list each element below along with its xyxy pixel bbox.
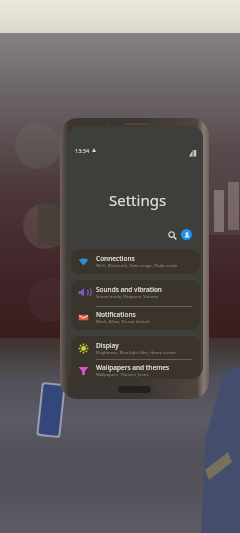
button[interactable]: Search (165, 228, 179, 242)
staticText: Wallpapers and themes (96, 363, 170, 372)
button[interactable]: Wallpapers and themes (71, 358, 200, 379)
staticText: Connections (96, 254, 135, 263)
staticText: 13:34 (75, 147, 90, 154)
staticText: Sound mode, Ringtone, Volume (96, 294, 159, 300)
button[interactable]: Account (181, 229, 192, 240)
staticText: Wi-Fi, Bluetooth, Data usage, Flight mod… (96, 263, 178, 269)
staticText: Brightness, Blue light filter, Home scre… (96, 350, 176, 356)
staticText: Sounds and vibration (96, 285, 162, 294)
button[interactable]: Connections (71, 249, 200, 274)
button[interactable]: Sounds and vibration (71, 280, 200, 305)
staticText: Wallpapers, Themes, Icons (96, 372, 149, 378)
staticText: Block, Allow, Do not disturb (96, 319, 150, 325)
button[interactable]: Notifications (71, 305, 200, 330)
staticText: Notifications (96, 310, 136, 319)
button[interactable]: Display (71, 336, 200, 361)
staticText: Display (96, 341, 119, 350)
staticText: Settings (109, 190, 167, 210)
